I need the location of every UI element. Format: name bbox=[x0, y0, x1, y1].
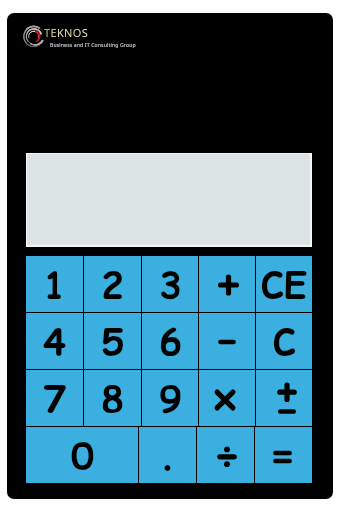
button[interactable]: Equals bbox=[255, 427, 312, 483]
button[interactable]: 8 bbox=[84, 370, 141, 426]
button[interactable]: Minus bbox=[199, 313, 255, 369]
staticText: TEKNOS bbox=[44, 25, 89, 40]
staticText: 0 bbox=[71, 430, 94, 482]
staticText: 6 bbox=[159, 316, 182, 368]
staticText: C bbox=[273, 316, 296, 368]
button[interactable]: 4 bbox=[26, 313, 83, 369]
button[interactable]: 6 bbox=[142, 313, 198, 369]
staticText: 5 bbox=[101, 316, 124, 368]
button[interactable]: C bbox=[256, 313, 312, 369]
button[interactable]: 0 bbox=[26, 427, 138, 483]
button[interactable]: 5 bbox=[84, 313, 141, 369]
button[interactable]: CE bbox=[256, 256, 312, 312]
staticText: Business and IT Consulting Group bbox=[50, 42, 136, 49]
button[interactable]: Multiply bbox=[199, 370, 255, 426]
staticText: 7 bbox=[43, 373, 66, 425]
staticText: CE bbox=[261, 259, 307, 311]
button[interactable]: Plus minus bbox=[256, 370, 312, 426]
button[interactable]: Plus bbox=[199, 256, 255, 312]
staticText: 2 bbox=[101, 259, 124, 311]
button[interactable]: 2 bbox=[84, 256, 141, 312]
staticText: . bbox=[159, 430, 176, 482]
staticText: 4 bbox=[43, 316, 66, 368]
staticText: 1 bbox=[43, 259, 66, 311]
other: Teknos logo bbox=[23, 26, 44, 47]
button[interactable]: 9 bbox=[142, 370, 198, 426]
button[interactable]: . bbox=[139, 427, 196, 483]
staticText: 9 bbox=[159, 373, 182, 425]
button[interactable]: Divide bbox=[197, 427, 254, 483]
button[interactable]: 3 bbox=[142, 256, 198, 312]
staticText: 8 bbox=[101, 373, 124, 425]
staticText: 3 bbox=[159, 259, 182, 311]
button[interactable]: 1 bbox=[26, 256, 83, 312]
button[interactable]: 7 bbox=[26, 370, 83, 426]
